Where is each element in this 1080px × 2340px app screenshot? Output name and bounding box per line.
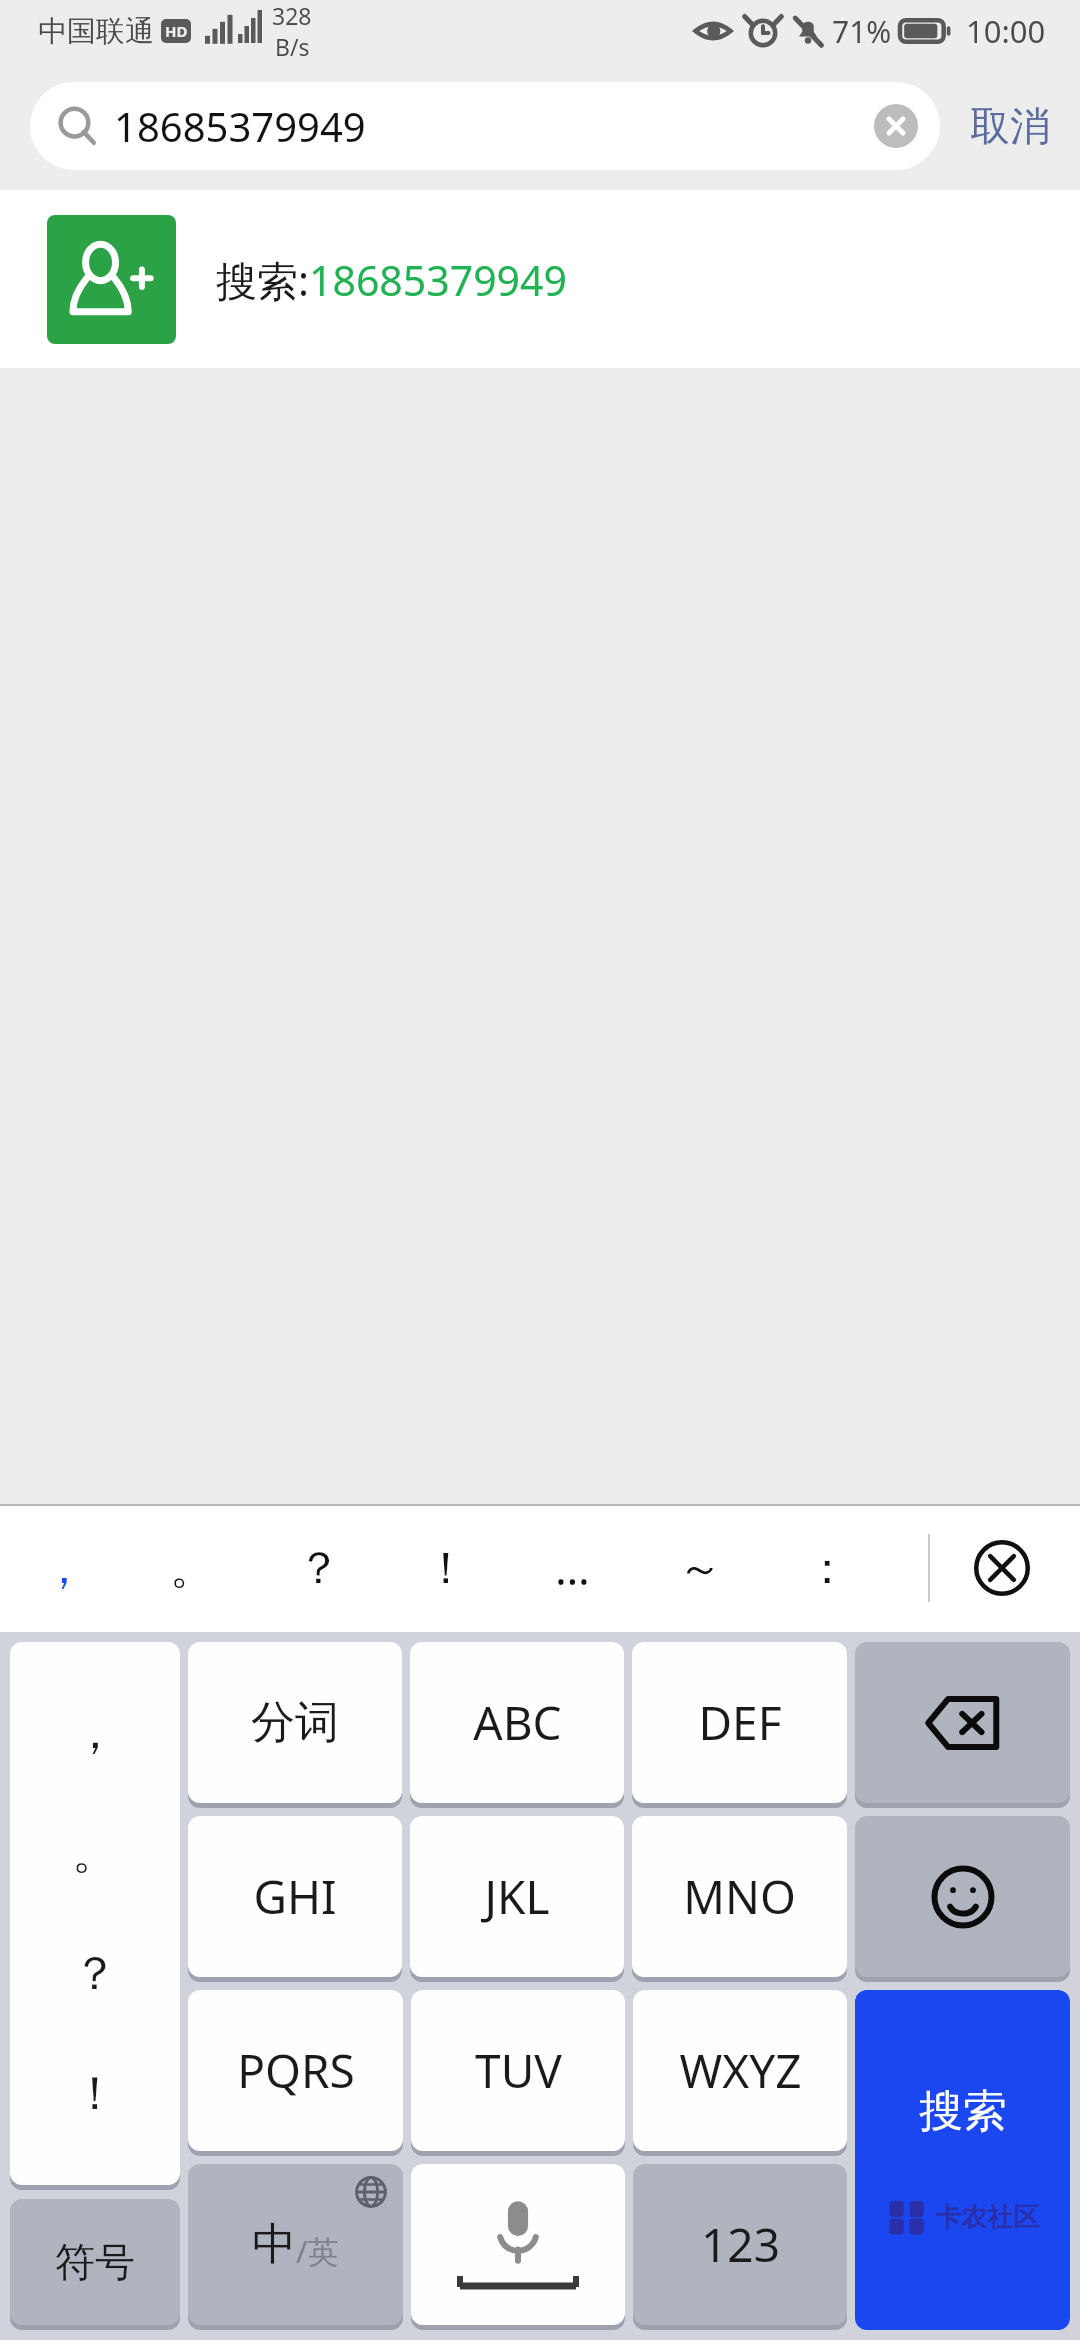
button[interactable]: 18685379949 bbox=[30, 82, 940, 170]
staticText: ， bbox=[72, 1704, 118, 1762]
staticText: 中 bbox=[252, 2217, 296, 2272]
staticText: 中国联通 bbox=[38, 13, 154, 50]
button[interactable]: TUV bbox=[411, 1990, 625, 2156]
staticText: ： bbox=[805, 1541, 849, 1596]
staticText: ！ bbox=[72, 2065, 118, 2123]
button[interactable]: ： bbox=[763, 1504, 890, 1632]
button[interactable]: ABC bbox=[410, 1642, 624, 1808]
staticText: PQRS bbox=[237, 2039, 355, 2102]
button[interactable]: ， bbox=[10, 1642, 180, 2190]
staticText: WXYZ bbox=[679, 2039, 802, 2102]
button[interactable]: MNO bbox=[632, 1816, 847, 1982]
staticText: JKL bbox=[484, 1865, 550, 1928]
button[interactable]: 符号 bbox=[10, 2199, 180, 2330]
button[interactable]: 取消 bbox=[940, 82, 1080, 170]
staticText: /英 bbox=[296, 2230, 339, 2272]
staticText: 。 bbox=[72, 1824, 118, 1882]
staticText: MNO bbox=[683, 1865, 796, 1928]
button[interactable]: WXYZ bbox=[633, 1990, 847, 2156]
button[interactable]: … bbox=[509, 1504, 636, 1632]
button[interactable]: JKL bbox=[410, 1816, 624, 1982]
staticText: DEF bbox=[698, 1691, 782, 1754]
staticText: 71% bbox=[832, 11, 892, 52]
staticText: 取消 bbox=[970, 101, 1050, 151]
button[interactable]: DEF bbox=[632, 1642, 847, 1808]
staticText: ？ bbox=[297, 1541, 341, 1596]
staticText: 123 bbox=[701, 2213, 780, 2276]
button[interactable]: Clear bbox=[874, 104, 918, 148]
staticText: 。 bbox=[170, 1541, 214, 1596]
button[interactable]: ！ bbox=[382, 1504, 509, 1632]
button[interactable]: ？ bbox=[255, 1504, 382, 1632]
staticText: HD bbox=[165, 21, 188, 41]
button[interactable]: GHI bbox=[188, 1816, 402, 1982]
staticText: TUV bbox=[475, 2039, 562, 2102]
staticText: 328 bbox=[272, 0, 312, 31]
staticText: 搜索 bbox=[919, 2084, 1007, 2139]
button[interactable]: PQRS bbox=[188, 1990, 403, 2156]
button[interactable]: 分词 bbox=[188, 1642, 402, 1808]
staticText: ！ bbox=[424, 1541, 468, 1596]
staticText: B/s bbox=[275, 31, 310, 62]
staticText: ～ bbox=[678, 1541, 722, 1596]
button[interactable]: 中 bbox=[188, 2164, 403, 2330]
staticText: 搜索:18685379949 bbox=[216, 252, 567, 308]
button[interactable]: 。 bbox=[128, 1504, 255, 1632]
staticText: ABC bbox=[473, 1691, 562, 1754]
button[interactable]: 123 bbox=[633, 2164, 847, 2330]
staticText: 18685379949 bbox=[114, 99, 366, 153]
button[interactable]: Backspace bbox=[855, 1642, 1070, 1808]
staticText: 分词 bbox=[251, 1695, 339, 1750]
button[interactable]: Emoji bbox=[855, 1816, 1070, 1982]
button[interactable]: ～ bbox=[636, 1504, 763, 1632]
button[interactable]: ， bbox=[0, 1504, 128, 1632]
staticText: … bbox=[555, 1538, 590, 1598]
staticText: 卡农社区 bbox=[935, 2201, 1039, 2234]
button[interactable]: Close keyboard bbox=[964, 1530, 1040, 1606]
button[interactable]: Voice input bbox=[411, 2164, 625, 2330]
staticText: 符号 bbox=[55, 2237, 135, 2287]
staticText: 10:00 bbox=[966, 10, 1046, 52]
button[interactable]: 搜索 bbox=[855, 1990, 1070, 2330]
staticText: ？ bbox=[72, 1945, 118, 2003]
staticText: GHI bbox=[253, 1865, 337, 1928]
staticText: ， bbox=[42, 1541, 86, 1596]
button[interactable]: 搜索:18685379949 bbox=[0, 190, 1080, 368]
